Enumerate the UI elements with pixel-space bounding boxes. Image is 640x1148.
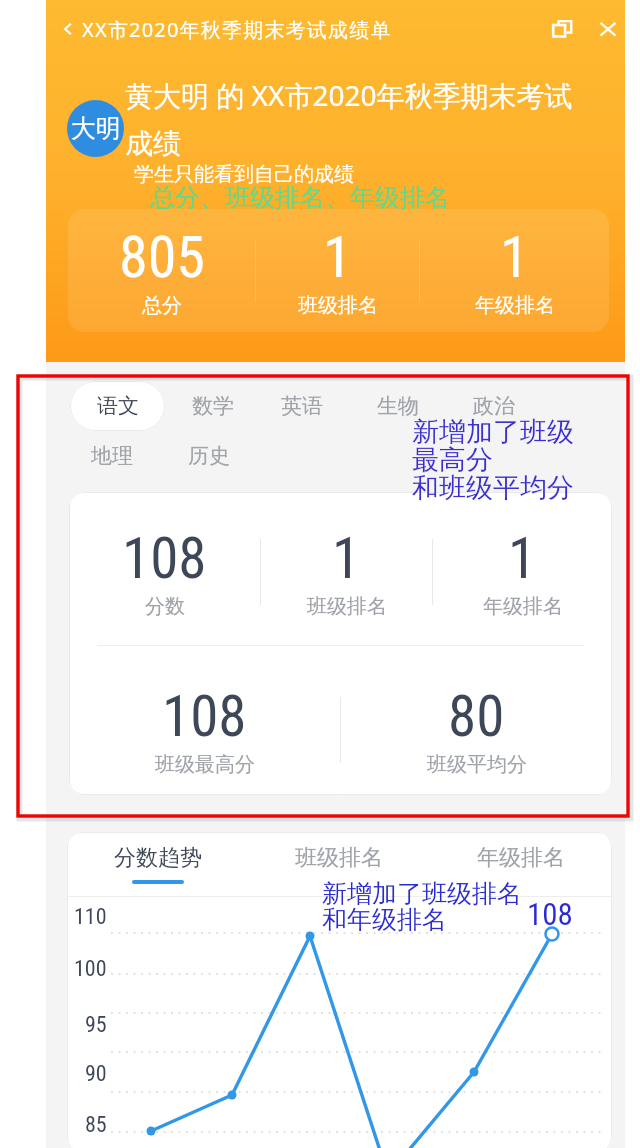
- staticText: 学生只能看到自己的成绩: [134, 162, 354, 187]
- staticText: 85: [85, 1112, 107, 1138]
- button[interactable]: Student avatar: [67, 100, 124, 157]
- button[interactable]: 生物: [367, 381, 429, 431]
- button[interactable]: 历史: [178, 431, 240, 481]
- staticText: 地理: [91, 443, 133, 469]
- staticText: 108: [122, 525, 207, 592]
- button[interactable]: 1: [261, 525, 432, 619]
- staticText: 班级排名: [295, 844, 383, 872]
- staticText: 1: [323, 223, 352, 291]
- staticText: 班级排名: [307, 594, 387, 619]
- staticText: 班级排名: [298, 293, 378, 318]
- button[interactable]: 1: [256, 223, 419, 318]
- button[interactable]: 80: [341, 683, 612, 777]
- staticText: 新增加了班级 最高分 和班级平均分: [412, 415, 574, 505]
- staticText: 总分、班级排名、年级排名: [150, 182, 450, 213]
- staticText: 年级排名: [477, 844, 565, 872]
- staticText: 95: [85, 1012, 107, 1038]
- staticText: 108: [162, 683, 247, 750]
- staticText: 1: [508, 525, 537, 592]
- staticText: 大明: [71, 113, 121, 144]
- button[interactable]: 108: [69, 525, 260, 619]
- staticText: 语文: [97, 393, 139, 419]
- staticText: 80: [448, 683, 505, 750]
- staticText: 新增加了班级排名 和年级排名: [322, 878, 522, 936]
- staticText: 班级最高分: [155, 752, 255, 777]
- staticText: 政治: [473, 393, 515, 419]
- staticText: XX市2020年秋季期末考试成绩单: [82, 16, 392, 43]
- button[interactable]: 班级排名: [248, 844, 430, 884]
- staticText: 英语: [281, 393, 323, 419]
- staticText: 总分: [142, 293, 182, 318]
- button[interactable]: 1: [433, 525, 612, 619]
- staticText: 数学: [192, 393, 234, 419]
- staticText: 805: [119, 223, 205, 291]
- button[interactable]: 805: [68, 223, 255, 318]
- staticText: 年级排名: [475, 293, 555, 318]
- button[interactable]: Restore window: [551, 18, 573, 40]
- button[interactable]: 分数趋势: [67, 844, 248, 884]
- staticText: 110: [74, 904, 107, 930]
- staticText: 分数: [145, 594, 185, 619]
- button[interactable]: 数学: [182, 381, 244, 431]
- staticText: 黄大明 的 XX市2020年秋季期末考试 成绩: [125, 76, 573, 161]
- button[interactable]: 语文: [70, 381, 165, 431]
- staticText: 1: [332, 525, 361, 592]
- button[interactable]: Close: [597, 18, 619, 40]
- staticText: 90: [85, 1061, 107, 1087]
- button[interactable]: Back: [56, 17, 80, 41]
- staticText: 分数趋势: [114, 844, 202, 872]
- button[interactable]: 政治: [463, 381, 525, 431]
- staticText: 年级排名: [483, 594, 563, 619]
- button[interactable]: 108: [69, 683, 340, 777]
- button[interactable]: 1: [420, 223, 609, 318]
- staticText: 100: [74, 956, 107, 982]
- staticText: 生物: [377, 393, 419, 419]
- button[interactable]: 年级排名: [430, 844, 612, 884]
- button[interactable]: 地理: [81, 431, 143, 481]
- staticText: 108: [527, 896, 573, 932]
- staticText: 历史: [188, 443, 230, 469]
- staticText: 1: [500, 223, 529, 291]
- staticText: 班级平均分: [427, 752, 527, 777]
- button[interactable]: 英语: [271, 381, 333, 431]
